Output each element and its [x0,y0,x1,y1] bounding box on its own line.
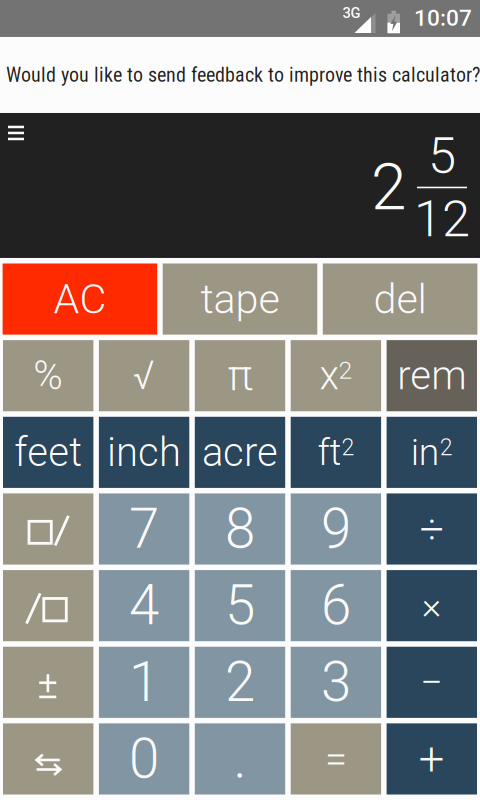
staticText: 8 [225,497,255,561]
button[interactable]: . [195,723,285,795]
button[interactable]: Denominator [3,570,93,641]
staticText: x [319,352,338,399]
staticText: Would you like to send feedback to impro… [6,63,480,87]
staticText: 7 [129,497,159,561]
staticText: . [233,727,246,791]
staticText: ÷ [420,504,444,554]
staticText: 9 [321,497,351,561]
staticText: 3 [321,650,351,714]
staticText: π [227,351,252,401]
staticText: 12 [414,189,470,249]
staticText: acre [202,429,278,476]
staticText: 5 [428,126,456,186]
staticText: 6 [321,574,351,638]
button[interactable]: feet [3,417,93,488]
staticText: feet [14,429,82,476]
staticText: + [419,732,445,785]
button[interactable]: π [195,340,285,411]
staticText: = [325,735,347,782]
button[interactable]: 0 [99,723,189,795]
staticText: del [374,275,427,323]
button[interactable]: 2 [195,647,285,718]
staticText: 2 [341,434,354,461]
button[interactable]: rem [387,340,477,411]
staticText: inch [107,429,181,476]
button[interactable]: Swap [3,723,93,795]
button[interactable]: Numerator [3,493,93,565]
button[interactable]: AC [3,263,157,335]
staticText: √ [133,352,155,399]
staticText: % [33,352,63,399]
button[interactable]: 6 [291,570,381,641]
button[interactable]: √ [99,340,189,411]
button[interactable]: acre [195,417,285,488]
button[interactable]: Would you like to send feedback to impro… [0,37,480,113]
staticText: 3G [342,4,360,22]
staticText: 2 [225,650,255,714]
staticText: rem [397,352,466,399]
button[interactable]: Plus or minus [3,647,93,718]
button[interactable]: 3 [291,647,381,718]
button[interactable]: Menu [0,117,32,149]
staticText: 2 [371,150,407,225]
button[interactable]: = [291,723,381,795]
staticText: 2 [338,356,352,385]
button[interactable]: inch [99,417,189,488]
staticText: in [411,430,440,474]
button[interactable]: tape [163,263,317,335]
staticText: × [422,584,442,627]
button[interactable]: 9 [291,493,381,565]
staticText: 1 [129,650,159,714]
staticText: 4 [129,574,159,638]
button[interactable]: x [291,340,381,411]
button[interactable]: in [387,417,477,488]
button[interactable]: − [387,647,477,718]
button[interactable]: + [387,723,477,795]
button[interactable]: × [387,570,477,641]
staticText: AC [53,275,106,323]
staticText: ft [317,430,341,474]
staticText: 0 [129,727,159,791]
button[interactable]: 5 [195,570,285,641]
staticText: 2 [440,434,453,461]
staticText: 5 [225,574,255,638]
button[interactable]: 4 [99,570,189,641]
button[interactable]: % [3,340,93,411]
button[interactable]: ft [291,417,381,488]
staticText: tape [200,275,279,323]
staticText: − [420,659,443,706]
button[interactable]: 8 [195,493,285,565]
button[interactable]: ÷ [387,493,477,565]
button[interactable]: 1 [99,647,189,718]
button[interactable]: del [323,263,477,335]
staticText: 10:07 [414,5,472,31]
button[interactable]: 7 [99,493,189,565]
